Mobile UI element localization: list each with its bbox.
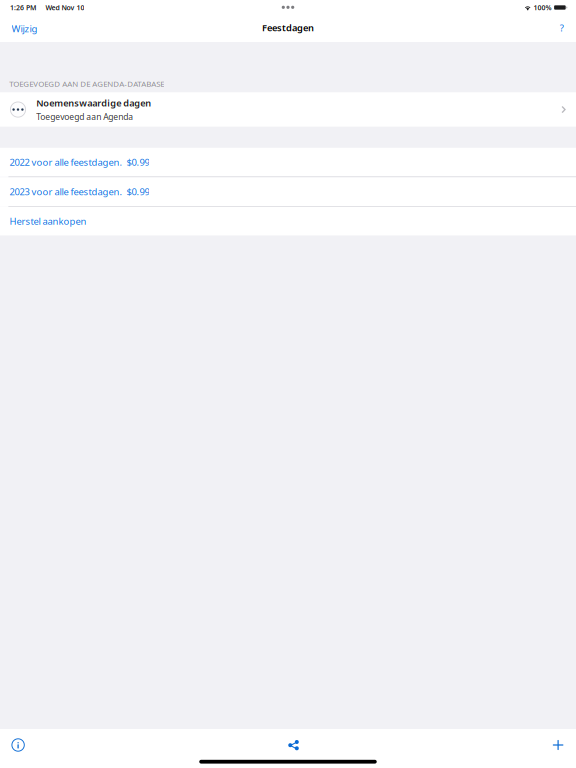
staticText: Toegevoegd aan Agenda [36, 111, 133, 122]
button[interactable]: Help [552, 15, 576, 42]
staticText: Feestdagen [262, 21, 314, 34]
staticText: 1:26 PM [10, 3, 36, 12]
staticText: 100% [533, 3, 551, 12]
staticText: ? [560, 21, 564, 34]
staticText: 2022 voor alle feestdagen. $0.99 [9, 156, 149, 169]
staticText: Noemenswaardige dagen [36, 97, 151, 109]
button[interactable]: Add [540, 732, 576, 758]
staticText: Wed Nov 10 [45, 3, 84, 12]
staticText: TOEGEVOEGD AAN DE AGENDA-DATABASE [9, 78, 164, 89]
button[interactable]: 2022 voor alle feestdagen. $0.99 [0, 148, 576, 177]
staticText: Wijzig [11, 22, 37, 35]
button[interactable]: Herstel aankopen [0, 207, 576, 235]
button[interactable]: Share [270, 732, 306, 758]
button[interactable]: Noemenswaardige dagen [0, 92, 576, 127]
staticText: 2023 voor alle feestdagen. $0.99 [9, 185, 149, 198]
staticText: Herstel aankopen [9, 215, 86, 227]
button[interactable]: Info [0, 732, 36, 758]
button[interactable]: 2023 voor alle feestdagen. $0.99 [0, 177, 576, 206]
button[interactable]: Wijzig [0, 15, 45, 42]
